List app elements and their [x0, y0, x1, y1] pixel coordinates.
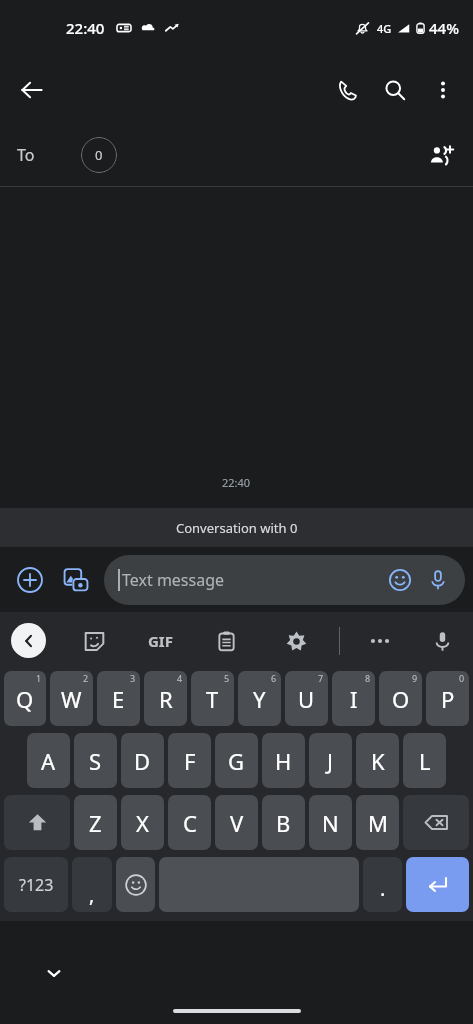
staticText: K: [371, 746, 385, 776]
button[interactable]: Emoji: [381, 561, 419, 599]
button[interactable]: P: [426, 671, 469, 726]
staticText: ?123: [19, 874, 54, 896]
staticText: 3: [130, 672, 136, 684]
button[interactable]: ,: [72, 857, 112, 912]
staticText: .: [380, 875, 386, 902]
staticText: To: [17, 144, 35, 166]
staticText: X: [136, 808, 149, 838]
button[interactable]: More options: [419, 66, 467, 114]
button[interactable]: Z: [74, 795, 117, 850]
staticText: C: [183, 808, 197, 838]
button[interactable]: R: [144, 671, 187, 726]
button[interactable]: Keyboard settings: [274, 619, 318, 663]
staticText: P: [441, 684, 455, 714]
staticText: Text message: [122, 569, 225, 591]
button[interactable]: Close toolbar: [11, 623, 46, 658]
button[interactable]: GIF: [134, 615, 186, 667]
staticText: Z: [89, 808, 102, 838]
button[interactable]: Text message: [104, 555, 465, 605]
button[interactable]: H: [262, 733, 305, 788]
staticText: F: [184, 746, 196, 776]
staticText: O: [392, 684, 410, 714]
button[interactable]: 0: [81, 137, 117, 173]
button[interactable]: Back: [8, 66, 56, 114]
button[interactable]: A: [27, 733, 70, 788]
button[interactable]: W: [50, 671, 93, 726]
button[interactable]: Backspace: [403, 795, 469, 850]
staticText: 4G: [377, 21, 392, 36]
button[interactable]: Call: [323, 66, 371, 114]
button[interactable]: Enter: [406, 857, 469, 912]
staticText: 0: [459, 672, 465, 684]
staticText: 0: [95, 146, 103, 164]
button[interactable]: O: [379, 671, 422, 726]
button[interactable]: X: [121, 795, 164, 850]
button[interactable]: S: [74, 733, 117, 788]
button[interactable]: Shift: [4, 795, 70, 850]
button[interactable]: Add attachment: [8, 558, 52, 602]
staticText: Y: [253, 684, 266, 714]
button[interactable]: Y: [238, 671, 281, 726]
button[interactable]: Gallery: [54, 558, 98, 602]
staticText: B: [276, 808, 291, 838]
button[interactable]: F: [168, 733, 211, 788]
button[interactable]: Emoji keyboard: [116, 857, 155, 912]
staticText: I: [350, 684, 358, 714]
staticText: T: [206, 684, 219, 714]
button[interactable]: E: [97, 671, 140, 726]
button[interactable]: Q: [4, 671, 46, 726]
staticText: 22:40: [222, 475, 251, 490]
button[interactable]: I: [332, 671, 375, 726]
button[interactable]: Stickers: [72, 619, 116, 663]
button[interactable]: Voice typing: [419, 618, 465, 664]
button[interactable]: Search: [371, 66, 419, 114]
staticText: U: [298, 684, 315, 714]
button[interactable]: More keyboard options: [357, 618, 403, 664]
button[interactable]: T: [191, 671, 234, 726]
staticText: H: [275, 746, 292, 776]
staticText: 6: [271, 672, 277, 684]
staticText: G: [228, 746, 245, 776]
staticText: GIF: [148, 631, 173, 651]
button[interactable]: ?123: [4, 857, 68, 912]
button[interactable]: L: [403, 733, 446, 788]
staticText: 4: [177, 672, 183, 684]
button[interactable]: Conversation with 0: [0, 508, 473, 547]
staticText: 9: [412, 672, 418, 684]
button[interactable]: K: [356, 733, 399, 788]
button[interactable]: Add recipient: [419, 133, 463, 177]
staticText: M: [368, 808, 388, 838]
button[interactable]: C: [168, 795, 211, 850]
button[interactable]: .: [363, 857, 402, 912]
staticText: 22:40: [66, 18, 105, 38]
staticText: 1: [36, 672, 42, 684]
staticText: L: [419, 746, 431, 776]
button[interactable]: B: [262, 795, 305, 850]
staticText: Q: [16, 684, 34, 714]
staticText: A: [41, 746, 56, 776]
staticText: W: [61, 684, 82, 714]
staticText: D: [134, 746, 151, 776]
staticText: S: [89, 746, 102, 776]
staticText: E: [112, 684, 125, 714]
button[interactable]: N: [309, 795, 352, 850]
staticText: J: [327, 746, 334, 776]
staticText: N: [322, 808, 339, 838]
staticText: ,: [89, 881, 95, 908]
button[interactable]: Hide keyboard: [36, 955, 72, 991]
staticText: 8: [365, 672, 371, 684]
button[interactable]: Voice input: [419, 561, 457, 599]
button[interactable]: V: [215, 795, 258, 850]
button[interactable]: U: [285, 671, 328, 726]
button[interactable]: M: [356, 795, 399, 850]
button[interactable]: J: [309, 733, 352, 788]
button[interactable]: Clipboard: [204, 619, 248, 663]
staticText: 5: [224, 672, 230, 684]
button[interactable]: D: [121, 733, 164, 788]
staticText: 7: [318, 672, 324, 684]
staticText: V: [230, 808, 244, 838]
button[interactable]: G: [215, 733, 258, 788]
staticText: R: [159, 684, 173, 714]
staticText: 2: [83, 672, 89, 684]
